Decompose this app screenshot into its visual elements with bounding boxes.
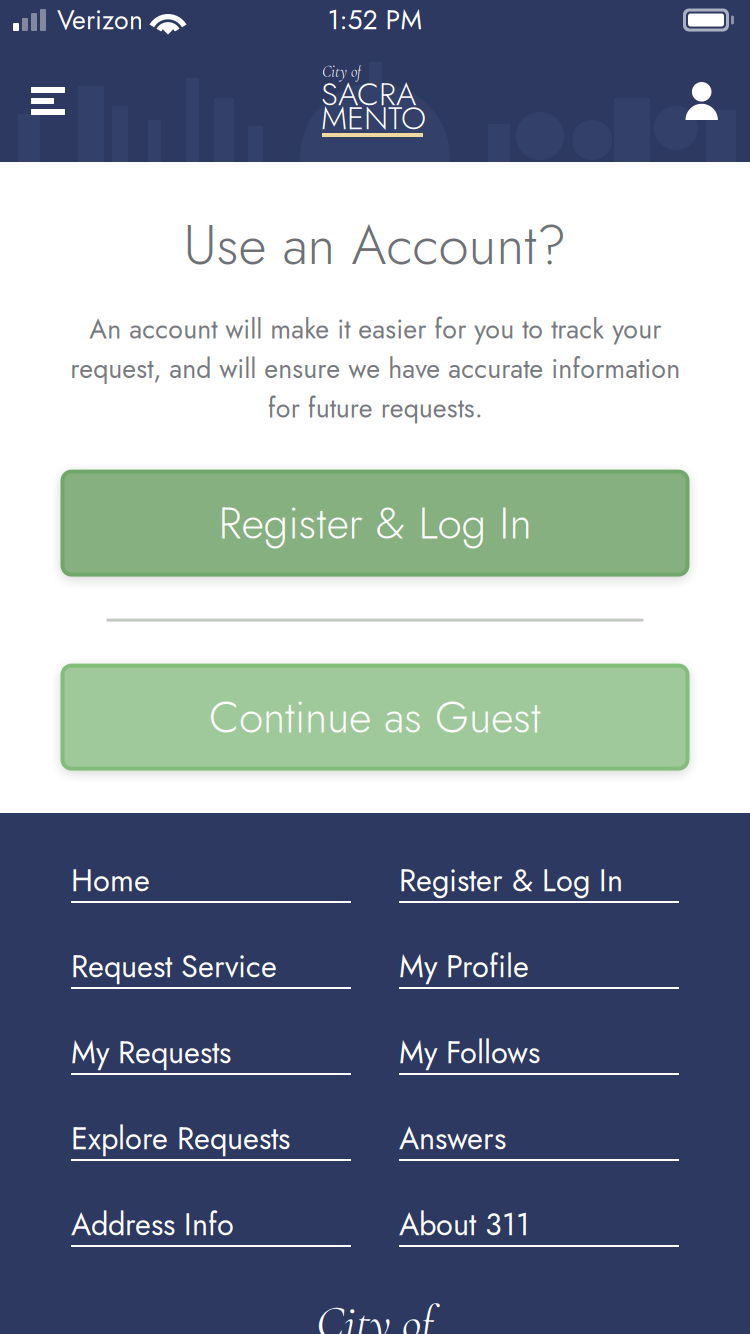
staticText: An account will make it easier for you t… bbox=[70, 310, 680, 428]
staticText: My Follows bbox=[399, 1030, 540, 1075]
button[interactable]: About 311 bbox=[399, 1204, 679, 1247]
button[interactable]: Continue as Guest bbox=[62, 666, 687, 769]
staticText: SACRA bbox=[321, 71, 416, 117]
staticText: Continue as Guest bbox=[209, 685, 541, 749]
staticText: Use an Account? bbox=[183, 205, 566, 284]
button[interactable]: Register & Log In bbox=[399, 860, 679, 903]
button[interactable]: Account bbox=[654, 40, 750, 162]
button[interactable]: Explore Requests bbox=[71, 1118, 351, 1161]
button[interactable]: Menu bbox=[0, 40, 96, 162]
button[interactable]: Answers bbox=[399, 1118, 679, 1161]
button[interactable]: Register & Log In bbox=[62, 472, 687, 575]
staticText: My Profile bbox=[399, 944, 529, 989]
staticText: Register & Log In bbox=[399, 858, 623, 903]
staticText: City of bbox=[316, 1294, 434, 1334]
button[interactable]: Address Info bbox=[71, 1204, 351, 1247]
staticText: About 311 bbox=[399, 1202, 530, 1247]
staticText: MENTO bbox=[321, 95, 426, 141]
button[interactable]: My Follows bbox=[399, 1032, 679, 1075]
staticText: Verizon bbox=[57, 1, 143, 39]
staticText: 1:52 PM bbox=[327, 1, 422, 39]
button[interactable]: Request Service bbox=[71, 946, 351, 989]
staticText: Request Service bbox=[71, 944, 277, 989]
staticText: Home bbox=[71, 858, 150, 903]
staticText: Register & Log In bbox=[218, 491, 531, 555]
button[interactable]: Home bbox=[71, 860, 351, 903]
staticText: Address Info bbox=[71, 1202, 234, 1247]
staticText: City of bbox=[322, 62, 361, 81]
staticText: My Requests bbox=[71, 1030, 231, 1075]
staticText: Answers bbox=[399, 1116, 506, 1161]
staticText: Explore Requests bbox=[71, 1116, 290, 1161]
button[interactable]: My Requests bbox=[71, 1032, 351, 1075]
button[interactable]: My Profile bbox=[399, 946, 679, 989]
